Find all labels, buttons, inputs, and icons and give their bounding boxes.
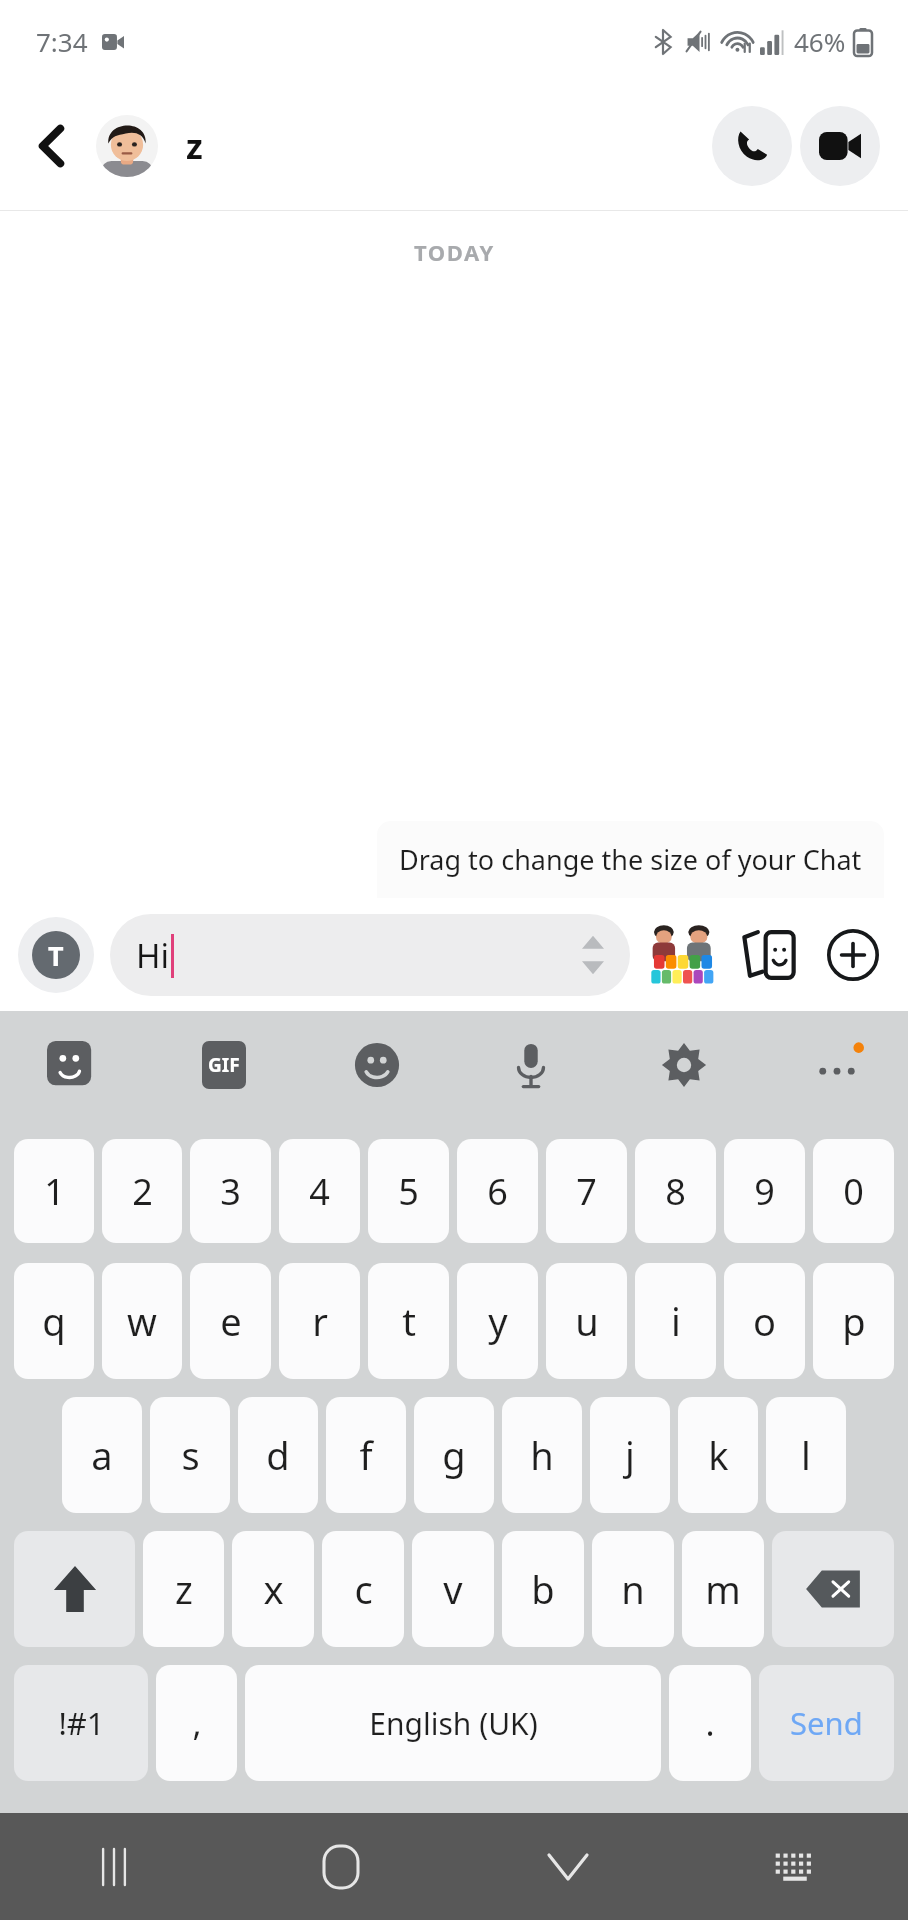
staticText: l [801, 1429, 811, 1481]
staticText: 0 [843, 1167, 864, 1216]
button[interactable]: Video call [800, 106, 880, 186]
button[interactable]: Switch keyboard [681, 1813, 908, 1920]
button[interactable]: Shift [14, 1531, 135, 1647]
button[interactable]: f [326, 1397, 406, 1513]
staticText: 3 [220, 1167, 241, 1216]
button[interactable]: m [682, 1531, 764, 1647]
button[interactable]: b [502, 1531, 584, 1647]
button[interactable]: k [678, 1397, 758, 1513]
button[interactable]: n [592, 1531, 674, 1647]
button[interactable]: Emoji [346, 1034, 408, 1096]
button[interactable]: i [635, 1263, 716, 1379]
staticText: q [42, 1295, 66, 1347]
button[interactable]: More options [816, 918, 890, 992]
button[interactable]: Send [759, 1665, 894, 1781]
staticText: 46% [794, 24, 846, 59]
button[interactable]: Stickers [646, 918, 720, 992]
staticText: f [359, 1429, 373, 1481]
button[interactable]: Hide keyboard [454, 1813, 681, 1920]
staticText: T [48, 937, 64, 974]
staticText: !#1 [58, 1702, 105, 1744]
button[interactable]: More [806, 1034, 868, 1096]
staticText: Hi [136, 933, 169, 978]
button[interactable]: Text formatting [18, 917, 94, 993]
staticText: 9 [754, 1167, 775, 1216]
button[interactable]: 1 [14, 1139, 94, 1243]
staticText: Send [790, 1702, 863, 1744]
button[interactable]: Stickers [40, 1034, 102, 1096]
staticText: 7:34 [36, 24, 88, 59]
button[interactable]: d [238, 1397, 318, 1513]
button[interactable]: w [102, 1263, 182, 1379]
button[interactable]: Voice call [712, 106, 792, 186]
button[interactable]: e [190, 1263, 271, 1379]
button[interactable]: 0 [813, 1139, 894, 1243]
button[interactable]: English (UK) [245, 1665, 661, 1781]
button[interactable]: GIF [193, 1034, 255, 1096]
staticText: z [175, 1563, 193, 1615]
staticText: . [705, 1700, 715, 1746]
staticText: x [263, 1563, 284, 1615]
staticText: 7 [576, 1167, 597, 1216]
button[interactable]: v [412, 1531, 494, 1647]
staticText: a [91, 1429, 113, 1481]
staticText: 4 [309, 1167, 330, 1216]
button[interactable]: Home [227, 1813, 454, 1920]
button[interactable]: p [813, 1263, 894, 1379]
staticText: o [753, 1295, 776, 1347]
staticText: e [220, 1295, 242, 1347]
staticText: s [181, 1429, 200, 1481]
staticText: , [192, 1700, 202, 1746]
staticText: r [312, 1295, 328, 1347]
button[interactable]: 6 [457, 1139, 538, 1243]
button[interactable]: c [322, 1531, 404, 1647]
button[interactable]: Back [22, 116, 82, 176]
staticText: i [671, 1295, 681, 1347]
staticText: TODAY [414, 237, 495, 267]
staticText: y [488, 1295, 508, 1347]
button[interactable]: AR emoji [732, 918, 806, 992]
button[interactable]: , [156, 1665, 237, 1781]
button[interactable]: 3 [190, 1139, 271, 1243]
staticText: 2 [132, 1167, 153, 1216]
button[interactable]: l [766, 1397, 846, 1513]
button[interactable]: . [669, 1665, 751, 1781]
button[interactable]: x [232, 1531, 314, 1647]
button[interactable]: j [590, 1397, 670, 1513]
button[interactable]: h [502, 1397, 582, 1513]
button[interactable]: s [150, 1397, 230, 1513]
button[interactable]: 9 [724, 1139, 805, 1243]
staticText: u [575, 1295, 599, 1347]
staticText: 1 [44, 1167, 65, 1216]
button[interactable]: 5 [368, 1139, 449, 1243]
button[interactable]: Backspace [772, 1531, 894, 1647]
staticText: b [531, 1563, 555, 1615]
button[interactable]: 8 [635, 1139, 716, 1243]
button[interactable]: q [14, 1263, 94, 1379]
button[interactable]: !#1 [14, 1665, 148, 1781]
button[interactable]: t [368, 1263, 449, 1379]
staticText: 8 [665, 1167, 686, 1216]
button[interactable]: a [62, 1397, 142, 1513]
button[interactable]: g [414, 1397, 494, 1513]
button[interactable]: y [457, 1263, 538, 1379]
button[interactable]: Drag to change the size of your Chat [377, 821, 884, 898]
staticText: z [186, 123, 203, 169]
staticText: t [402, 1295, 416, 1347]
staticText: Drag to change the size of your Chat [399, 841, 862, 878]
staticText: j [625, 1429, 635, 1481]
button[interactable]: z [143, 1531, 224, 1647]
button[interactable]: Voice input [500, 1034, 562, 1096]
button[interactable]: r [279, 1263, 360, 1379]
button[interactable]: 4 [279, 1139, 360, 1243]
staticText: d [266, 1429, 290, 1481]
button[interactable]: 7 [546, 1139, 627, 1243]
button[interactable]: o [724, 1263, 805, 1379]
button[interactable]: Keyboard settings [653, 1034, 715, 1096]
button[interactable]: Recents [0, 1813, 227, 1920]
staticText: n [621, 1563, 645, 1615]
button[interactable]: u [546, 1263, 627, 1379]
button[interactable]: 2 [102, 1139, 182, 1243]
staticText: p [842, 1295, 866, 1347]
button[interactable]: Hi [110, 914, 630, 996]
